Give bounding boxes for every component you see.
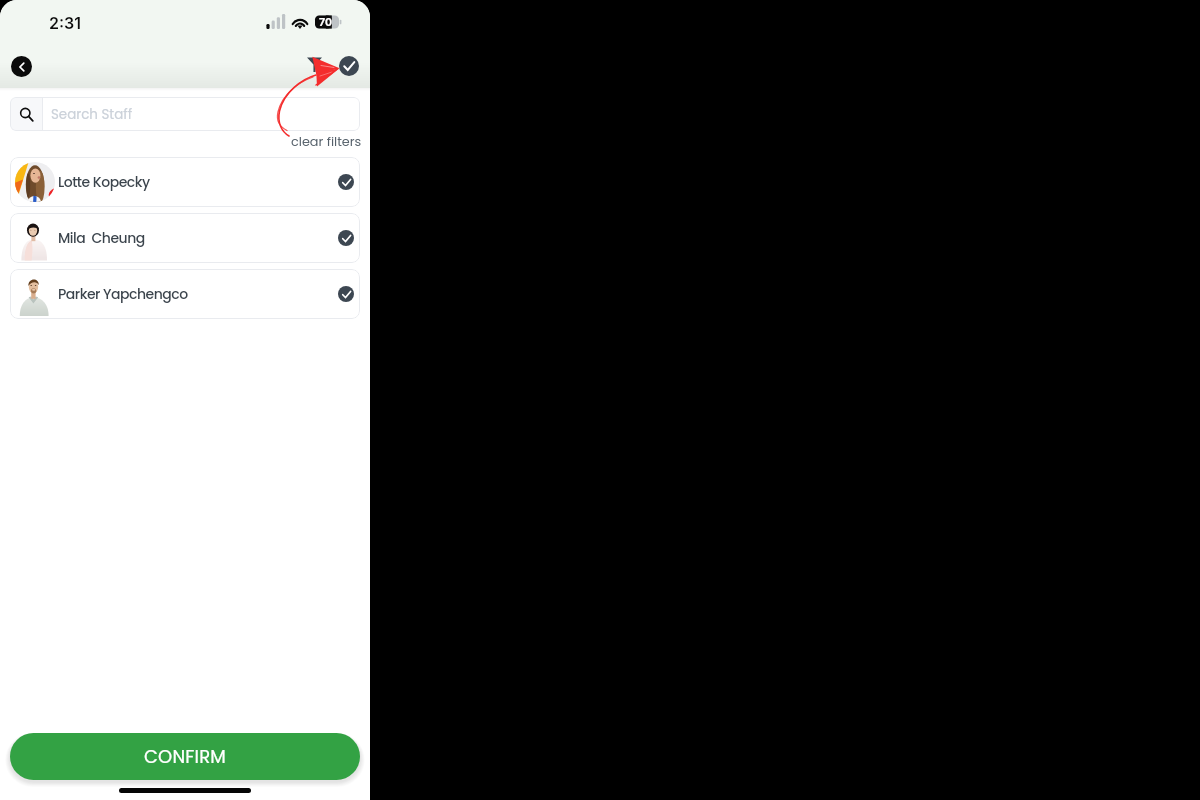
button[interactable]: Done — [339, 56, 359, 76]
button[interactable]: Back — [11, 56, 32, 77]
staticText: CONFIRM — [144, 744, 227, 769]
staticText: Mila Cheung — [58, 228, 145, 248]
button[interactable]: clear filters — [250, 133, 362, 151]
button[interactable]: Mila Cheung — [10, 213, 360, 263]
staticText: Lotte Kopecky — [58, 172, 150, 192]
staticText: clear filters — [291, 133, 362, 151]
button[interactable]: CONFIRM — [10, 733, 360, 780]
button[interactable]: Deselect Mila Cheung — [338, 230, 354, 246]
button[interactable]: Deselect Parker Yapchengco — [338, 286, 354, 302]
button[interactable]: Parker Yapchengco — [10, 269, 360, 319]
button[interactable]: Search — [10, 97, 360, 131]
staticText: 2:31 — [49, 13, 82, 32]
staticText: Search Staff — [51, 105, 133, 124]
button[interactable]: Deselect Lotte Kopecky — [338, 174, 354, 190]
staticText: 70 — [317, 16, 334, 29]
button[interactable]: Search — [10, 97, 42, 131]
button[interactable]: Lotte Kopecky — [10, 157, 360, 207]
button[interactable]: Filter — [305, 55, 325, 75]
staticText: Parker Yapchengco — [58, 284, 188, 304]
